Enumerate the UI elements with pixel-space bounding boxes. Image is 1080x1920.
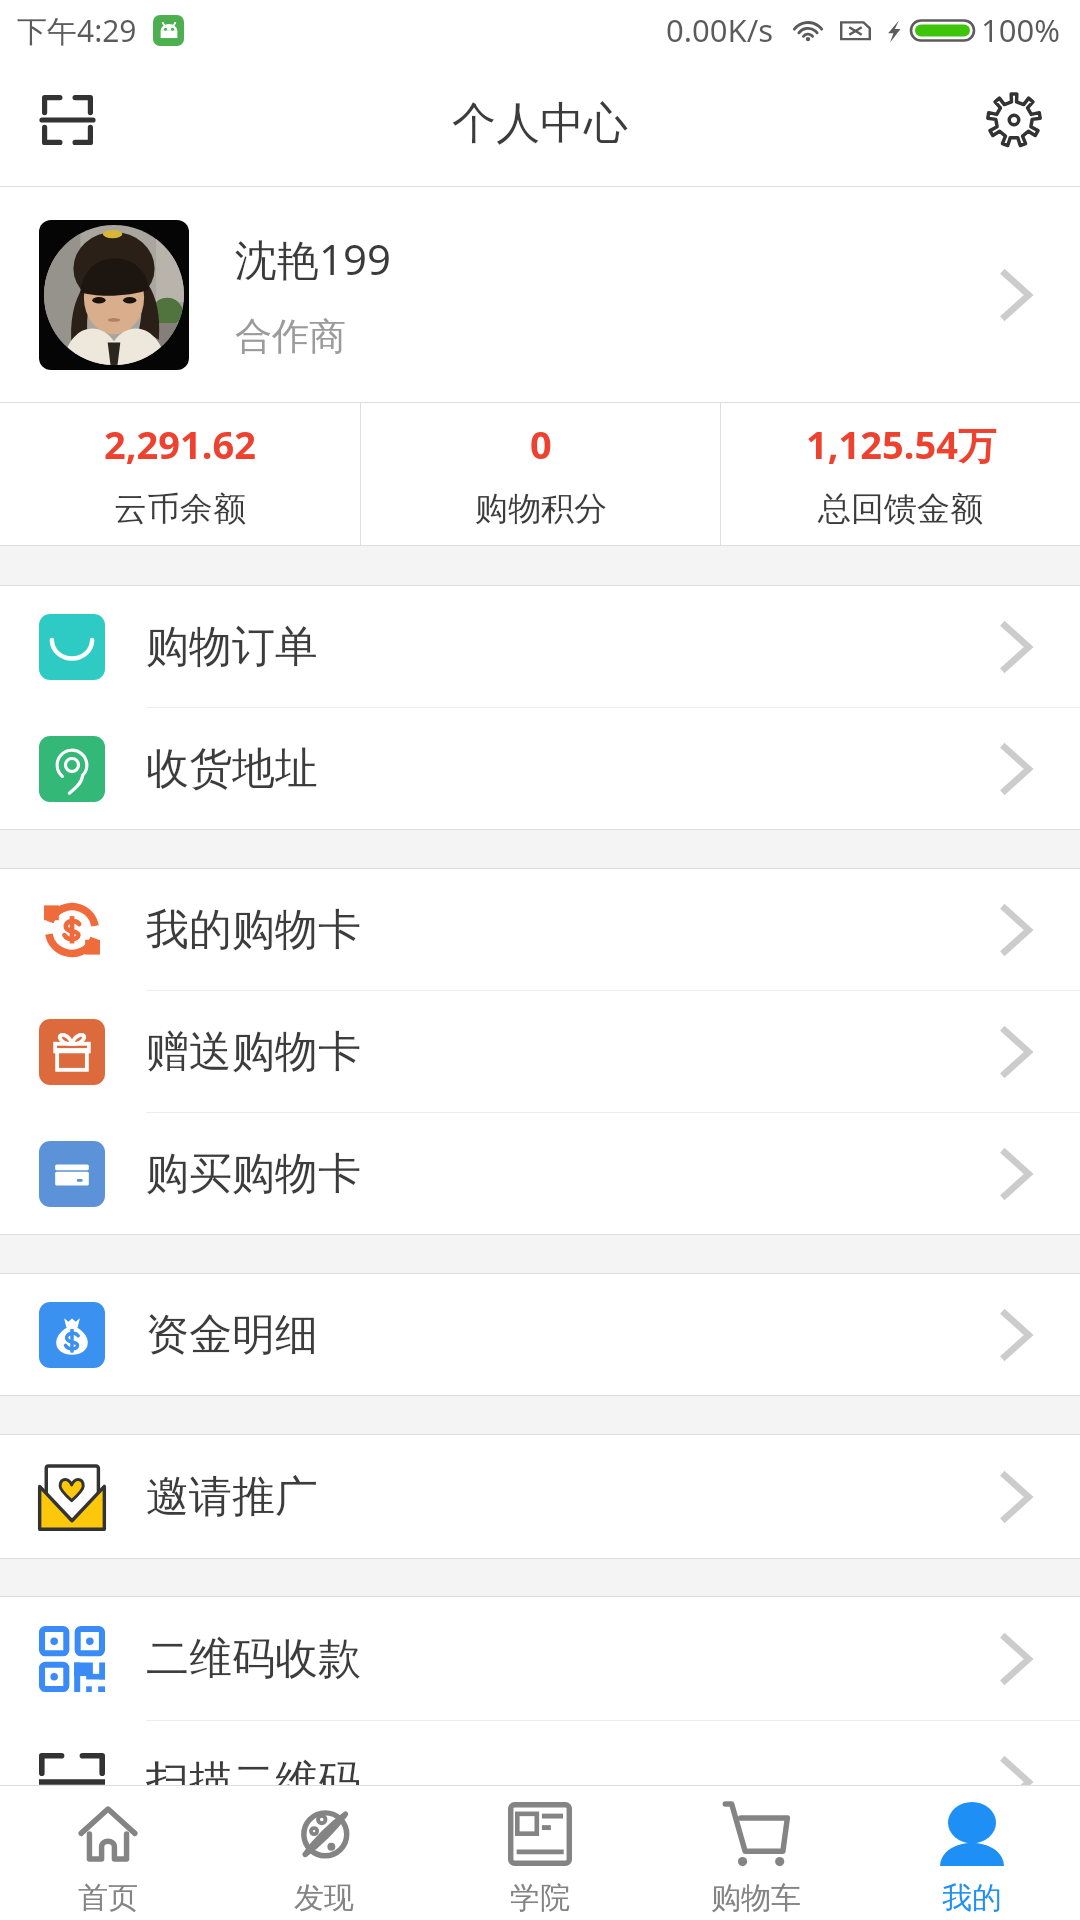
staticText: 赠送购物卡 [146,1025,1001,1079]
button[interactable]: 2,291.62 [0,403,360,545]
staticText: 发现 [294,1879,354,1917]
staticText: 购买购物卡 [146,1147,1001,1201]
button[interactable]: 资金明细 [0,1274,1080,1395]
staticText: 我的购物卡 [146,903,1001,957]
staticText: 总回馈金额 [818,488,983,530]
button[interactable]: 购买购物卡 [0,1113,1080,1234]
staticText: 扫描二维码 [146,1755,1001,1809]
button[interactable]: 二维码收款 [0,1597,1080,1720]
button[interactable]: 我的购物卡 [0,869,1080,990]
staticText: 1,125.54万 [806,418,996,470]
button[interactable]: 发现 [216,1785,432,1920]
button[interactable]: 我的 [864,1785,1080,1920]
staticText: 合作商 [235,313,346,360]
button[interactable]: 首页 [0,1785,216,1920]
button[interactable]: 邀请推广 [0,1435,1080,1558]
staticText: 0.00K/s [666,9,774,51]
button[interactable]: 购物车 [648,1785,864,1920]
button[interactable]: Settings [960,69,1068,177]
button[interactable]: 0 [361,403,720,545]
button[interactable]: 扫描二维码 [0,1721,1080,1843]
button[interactable]: 学院 [432,1785,648,1920]
staticText: 个人中心 [452,96,628,151]
staticText: 下午4:29 [17,10,137,51]
staticText: 资金明细 [146,1308,1001,1362]
button[interactable]: 购物订单 [0,586,1080,707]
button[interactable]: 沈艳199 [0,187,1080,402]
staticText: 购物积分 [475,488,607,530]
button[interactable]: 赠送购物卡 [0,991,1080,1112]
staticText: 邀请推广 [146,1470,1001,1524]
staticText: 收货地址 [146,742,1001,796]
staticText: 购物车 [711,1879,801,1917]
staticText: 学院 [510,1879,570,1917]
button[interactable]: 1,125.54万 [721,403,1080,545]
staticText: 首页 [78,1879,138,1917]
staticText: 二维码收款 [146,1632,1001,1686]
staticText: 云币余额 [114,488,246,530]
staticText: 购物订单 [146,620,1001,674]
staticText: 0 [530,418,552,470]
staticText: 100% [981,9,1060,51]
staticText: 沈艳199 [235,230,392,287]
staticText: 2,291.62 [104,418,256,470]
button[interactable]: Scan QR code [13,69,121,177]
staticText: 我的 [942,1879,1002,1917]
button[interactable]: 收货地址 [0,708,1080,829]
